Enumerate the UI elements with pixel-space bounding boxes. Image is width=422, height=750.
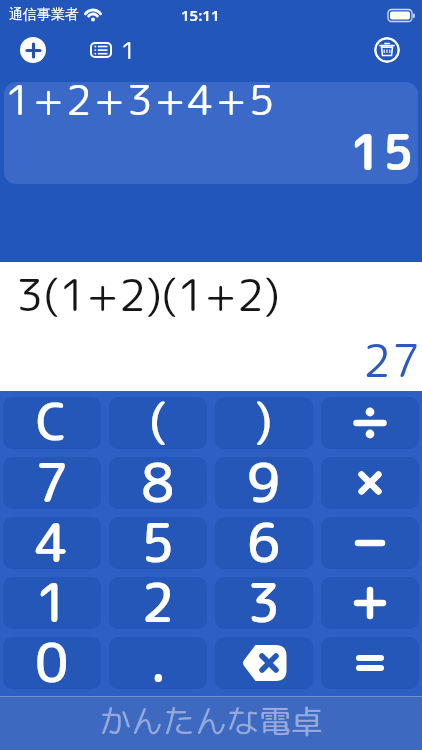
button[interactable]: 1+2+3+4+5 [4,82,418,184]
staticText: 27 [363,329,421,392]
button[interactable]: 1 [3,577,101,629]
staticText: 7 [35,457,69,509]
staticText: ( [149,397,167,449]
staticText: 通信事業者 [9,6,79,24]
button[interactable]: 0 [3,637,101,689]
staticText: 1 [121,34,136,66]
staticText: . [150,637,167,689]
staticText: 5 [141,517,175,569]
staticText: 4 [35,517,69,569]
button[interactable] [374,37,400,63]
button[interactable]: 3 [215,577,313,629]
button[interactable]: 1 [90,34,136,66]
button[interactable]: ) [215,397,313,449]
button[interactable]: ( [109,397,207,449]
staticText: 3(1+2)(1+2) [16,264,280,325]
button[interactable]: 9 [215,457,313,509]
staticText: ) [255,397,273,449]
staticText: 1+2+3+4+5 [5,82,277,129]
button[interactable] [321,397,419,449]
button[interactable] [20,37,46,63]
staticText: 8 [141,457,175,509]
button[interactable]: 4 [3,517,101,569]
staticText: 6 [247,517,281,569]
staticText: かんたんな電卓 [99,699,324,744]
button[interactable]: . [109,637,207,689]
staticText: 15:11 [181,5,220,25]
button[interactable]: 6 [215,517,313,569]
button[interactable] [215,637,313,689]
button[interactable] [321,457,419,509]
button[interactable] [321,517,419,569]
button[interactable]: かんたんな電卓 [0,696,422,750]
button[interactable]: 7 [3,457,101,509]
staticText: 3 [247,577,281,629]
button[interactable]: C [3,397,101,449]
button[interactable] [321,577,419,629]
button[interactable]: 2 [109,577,207,629]
button[interactable]: 5 [109,517,207,569]
button[interactable]: 8 [109,457,207,509]
staticText: 15 [350,118,416,184]
staticText: 9 [247,457,281,509]
staticText: C [36,397,68,449]
staticText: 0 [35,637,69,689]
staticText: 1 [35,577,69,629]
button[interactable] [321,637,419,689]
staticText: 2 [141,577,175,629]
